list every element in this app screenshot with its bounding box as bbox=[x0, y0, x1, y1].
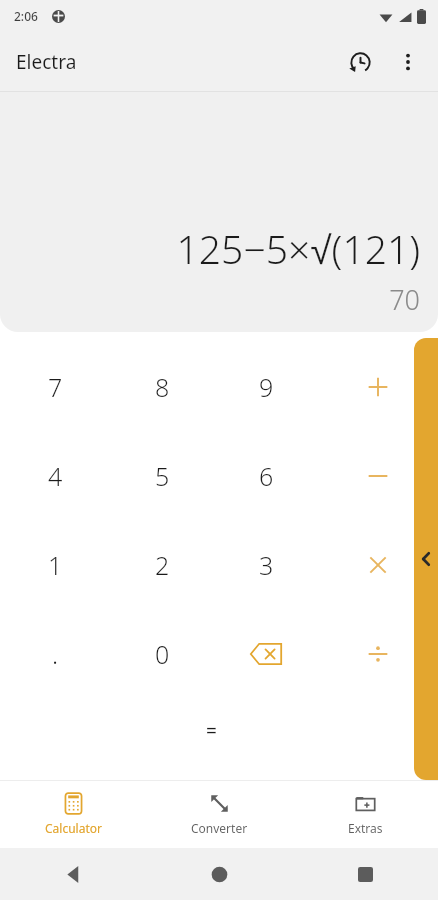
staticText: 2 bbox=[155, 548, 170, 582]
button[interactable]: = bbox=[168, 706, 254, 756]
staticText: . bbox=[52, 637, 59, 671]
button[interactable]: Extras bbox=[292, 780, 438, 848]
button[interactable]: 8 bbox=[110, 342, 214, 431]
staticText: 3 bbox=[259, 548, 274, 582]
button[interactable] bbox=[318, 431, 438, 520]
staticText: 6 bbox=[259, 459, 274, 493]
staticText: 4 bbox=[48, 459, 63, 493]
button[interactable]: 5 bbox=[110, 431, 214, 520]
button[interactable]: 6 bbox=[214, 431, 318, 520]
staticText: 125−5×√(121) bbox=[176, 222, 420, 275]
staticText: 8 bbox=[155, 370, 170, 404]
button[interactable]: Back bbox=[0, 848, 146, 900]
button[interactable] bbox=[318, 609, 438, 698]
button[interactable] bbox=[318, 520, 438, 609]
button[interactable]: Recent apps bbox=[292, 848, 438, 900]
staticText: 7 bbox=[48, 370, 63, 404]
staticText: Calculator bbox=[45, 820, 102, 836]
staticText: 1 bbox=[48, 548, 63, 582]
staticText: 70 bbox=[389, 281, 420, 318]
button[interactable]: Backspace bbox=[214, 609, 318, 698]
button[interactable]: Calculator bbox=[0, 780, 146, 848]
button[interactable]: 3 bbox=[214, 520, 318, 609]
button[interactable]: More options bbox=[384, 38, 432, 86]
staticText: Electra bbox=[16, 49, 77, 75]
button[interactable]: 9 bbox=[214, 342, 318, 431]
button[interactable]: . bbox=[0, 609, 110, 698]
button[interactable]: 4 bbox=[0, 431, 110, 520]
button[interactable]: Home bbox=[146, 848, 292, 900]
staticText: 5 bbox=[155, 459, 170, 493]
staticText: 9 bbox=[259, 370, 274, 404]
staticText: = bbox=[206, 718, 217, 744]
button[interactable]: 1 bbox=[0, 520, 110, 609]
button[interactable] bbox=[318, 342, 438, 431]
staticText: 0 bbox=[155, 637, 170, 671]
button[interactable]: Converter bbox=[146, 780, 292, 848]
button[interactable]: 7 bbox=[0, 342, 110, 431]
button[interactable]: 0 bbox=[110, 609, 214, 698]
button[interactable]: History bbox=[336, 38, 384, 86]
button[interactable]: 2 bbox=[110, 520, 214, 609]
button[interactable]: Open scientific keypad bbox=[414, 338, 438, 780]
staticText: Extras bbox=[348, 820, 383, 836]
staticText: Converter bbox=[191, 820, 248, 836]
staticText: 2:06 bbox=[14, 8, 38, 24]
